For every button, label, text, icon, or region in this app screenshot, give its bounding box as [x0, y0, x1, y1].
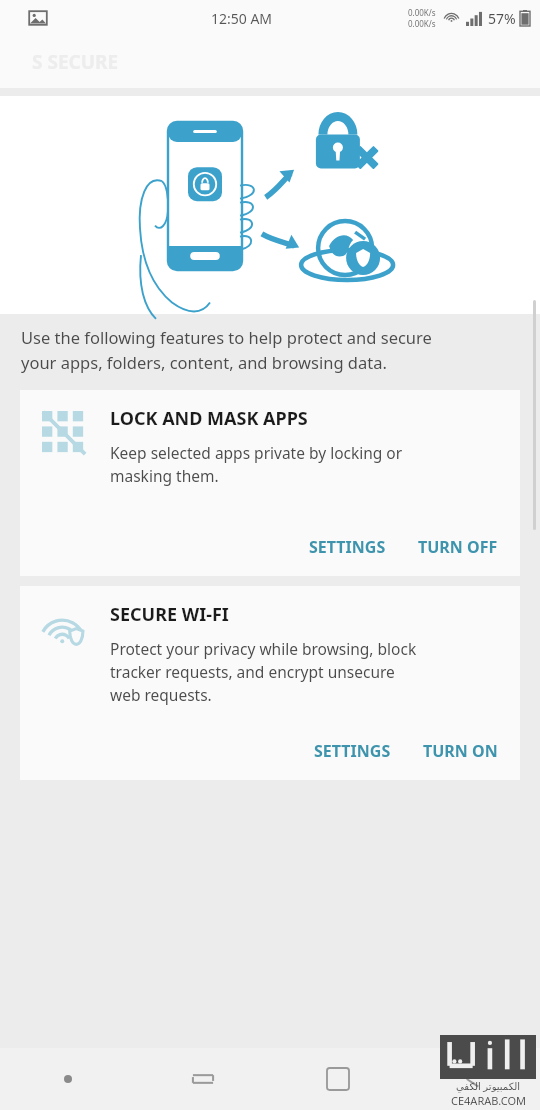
button[interactable]: Home — [270, 1048, 405, 1110]
staticText: 0.00K/s — [408, 18, 436, 29]
staticText: CE4ARAB.COM — [451, 1093, 526, 1108]
staticText: 12:50 AM — [211, 9, 273, 28]
button[interactable]: Back — [405, 1048, 540, 1110]
staticText: Keep selected apps private by locking or… — [110, 442, 403, 487]
staticText: TURN OFF — [418, 536, 498, 558]
staticText: Protect your privacy while browsing, blo… — [110, 638, 417, 706]
button[interactable]: SETTINGS — [293, 524, 402, 570]
staticText: SETTINGS — [314, 740, 391, 762]
staticText: الكمبيوتر الكفي — [456, 1079, 520, 1093]
staticText: Use the following features to help prote… — [21, 326, 432, 373]
button[interactable]: LOCK AND MASK APPS — [20, 390, 520, 576]
button[interactable]: SETTINGS — [298, 728, 407, 774]
button[interactable]: TURN OFF — [402, 524, 514, 570]
button[interactable]: More — [0, 1048, 135, 1110]
staticText: 57% — [488, 9, 516, 28]
staticText: TURN ON — [423, 740, 498, 762]
staticText: SECURE WI-FI — [110, 602, 229, 627]
staticText: SETTINGS — [309, 536, 386, 558]
button[interactable]: SECURE WI-FI — [20, 586, 520, 780]
staticText: S SECURE — [32, 49, 119, 75]
button[interactable]: TURN ON — [407, 728, 514, 774]
button[interactable]: Recents — [135, 1048, 270, 1110]
staticText: LOCK AND MASK APPS — [110, 406, 308, 431]
staticText: 0.00K/s — [408, 7, 436, 18]
